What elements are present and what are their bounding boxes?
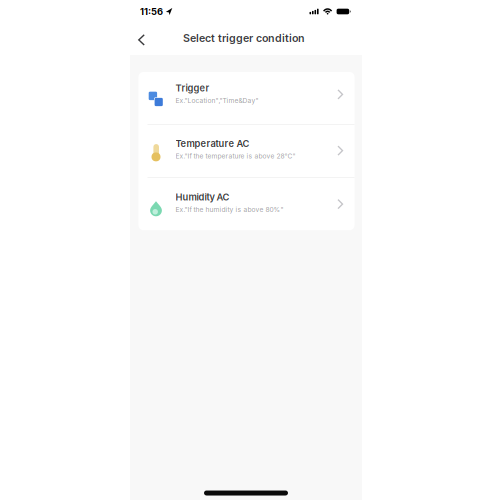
staticText: Select trigger condition bbox=[183, 32, 305, 44]
button[interactable]: Humidity AC bbox=[138, 178, 354, 230]
staticText: Temperature AC bbox=[175, 138, 249, 149]
button[interactable]: Temperature AC bbox=[138, 125, 354, 177]
staticText: Ex."If the temperature is above 28°C" bbox=[175, 152, 295, 160]
staticText: Trigger bbox=[175, 83, 209, 94]
staticText: Ex."Location","Time&Day" bbox=[175, 97, 258, 105]
button[interactable]: Trigger bbox=[138, 72, 354, 124]
staticText: Humidity AC bbox=[175, 192, 229, 203]
staticText: Ex."If the humidity is above 80%" bbox=[175, 206, 283, 214]
button[interactable]: Back bbox=[130, 32, 145, 46]
staticText: 11:56 bbox=[140, 6, 163, 17]
